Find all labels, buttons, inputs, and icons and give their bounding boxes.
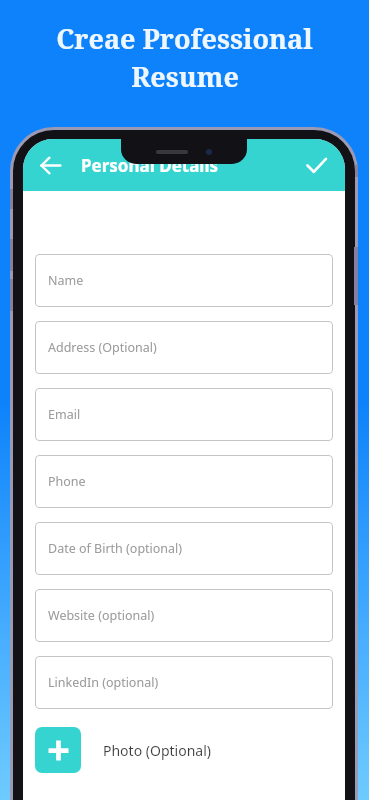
staticText: Date of Birth (optional) [48,540,183,557]
staticText: Resume [131,58,239,95]
staticText: Personal Details [81,154,297,177]
button[interactable]: Name [35,254,333,307]
staticText: LinkedIn (optional) [48,674,159,691]
staticText: Name [48,272,84,289]
staticText: Phone [48,473,86,490]
button[interactable]: Save [297,146,335,184]
button[interactable]: Phone [35,455,333,508]
staticText: Creae Professional [56,20,313,57]
button[interactable]: Website (optional) [35,589,333,642]
button[interactable]: LinkedIn (optional) [35,656,333,709]
staticText: Address (Optional) [48,339,157,356]
button[interactable]: Address (Optional) [35,321,333,374]
staticText: Email [48,406,81,423]
staticText: Website (optional) [48,607,155,624]
button[interactable]: Email [35,388,333,441]
button[interactable]: Photo (Optional) [35,727,333,773]
button[interactable]: Back [31,146,69,184]
staticText: Photo (Optional) [103,741,211,760]
button[interactable]: Date of Birth (optional) [35,522,333,575]
